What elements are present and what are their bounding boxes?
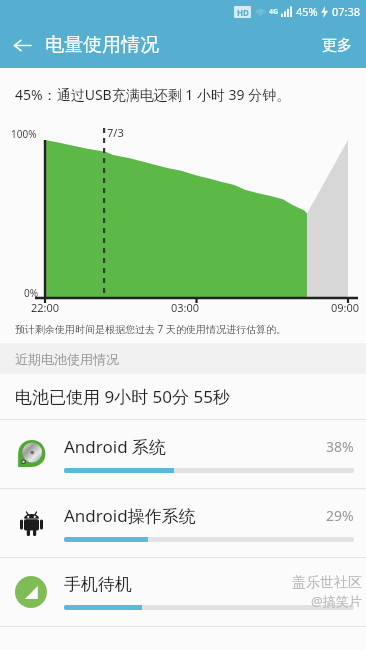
staticText: 预计剩余使用时间是根据您过去 7 天的使用情况进行估算的。 — [15, 322, 286, 336]
staticText: 电池已使用 9小时 50分 55秒 — [15, 385, 230, 408]
staticText: 09:00 — [331, 300, 360, 315]
staticText: 盖乐世社区 — [292, 574, 362, 592]
staticText: 7/3 — [107, 125, 124, 140]
staticText: 38% — [326, 437, 354, 456]
staticText: @搞笑片 — [311, 592, 362, 610]
button[interactable]: Android操作系统 — [0, 489, 366, 557]
staticText: 22:00 — [31, 300, 60, 315]
staticText: 电量使用情况 — [45, 33, 159, 57]
staticText: 近期电池使用情况 — [15, 351, 119, 367]
staticText: HD — [237, 7, 249, 18]
staticText: 100% — [11, 127, 37, 141]
staticText: 4G — [269, 7, 279, 17]
staticText: 03:00 — [171, 300, 200, 315]
button[interactable]: Android 系统 — [0, 420, 366, 488]
staticText: Android操作系统 — [64, 504, 196, 527]
staticText: 45%：通过USB充满电还剩 1 小时 39 分钟。 — [15, 85, 291, 104]
staticText: 0% — [24, 286, 39, 300]
staticText: 45% — [296, 4, 318, 19]
button[interactable]: 更多 — [308, 26, 366, 65]
staticText: 更多 — [322, 36, 352, 55]
button[interactable]: Back — [0, 23, 44, 67]
staticText: 07:38 — [332, 4, 361, 19]
staticText: 29% — [326, 506, 354, 525]
button[interactable]: 手机待机 — [0, 558, 366, 626]
staticText: Android 系统 — [64, 435, 167, 458]
staticText: 手机待机 — [64, 574, 132, 595]
